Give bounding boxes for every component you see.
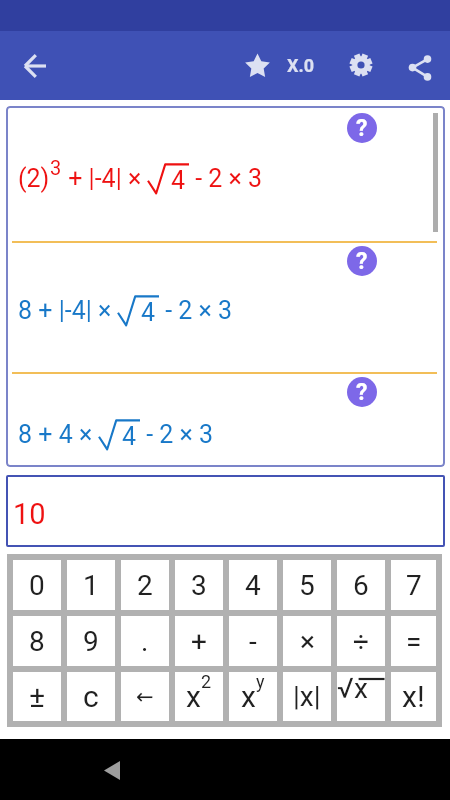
staticText: 8 + 4 × — [18, 420, 99, 449]
staticText: y — [256, 671, 265, 692]
staticText: ? — [356, 248, 368, 275]
staticText: + |-4| × — [62, 164, 148, 193]
staticText: + — [191, 625, 207, 658]
button[interactable]: 8 — [13, 616, 61, 666]
button[interactable]: x — [175, 672, 223, 721]
button[interactable] — [405, 50, 435, 80]
staticText: x — [186, 679, 201, 714]
staticText: - 2 × 3 — [159, 296, 233, 325]
staticText: x — [354, 672, 368, 705]
staticText: 4 — [122, 422, 137, 451]
button[interactable]: √ — [337, 672, 385, 721]
staticText: x — [241, 679, 256, 714]
staticText: ? — [356, 115, 368, 142]
button[interactable]: 3 — [175, 560, 223, 610]
staticText: - — [249, 625, 257, 658]
staticText: 9 — [83, 625, 99, 658]
button[interactable]: c — [67, 672, 115, 721]
staticText: ± — [29, 679, 46, 714]
button[interactable]: |x| — [283, 672, 331, 721]
button[interactable]: - — [229, 616, 277, 666]
button[interactable]: 2 — [121, 560, 169, 610]
staticText: 7 — [406, 569, 422, 602]
staticText: = — [406, 625, 422, 658]
staticText: 8 + |-4| × — [18, 296, 118, 325]
staticText: × — [300, 625, 315, 658]
staticText: 8 — [29, 625, 45, 658]
button[interactable]: + — [175, 616, 223, 666]
button[interactable]: 4 — [229, 560, 277, 610]
button[interactable]: x — [229, 672, 277, 721]
button[interactable]: 9 — [67, 616, 115, 666]
staticText: - 2 × 3 — [140, 420, 214, 449]
staticText: 4 — [245, 569, 261, 602]
button[interactable]: = — [391, 616, 436, 666]
button[interactable]: 1 — [67, 560, 115, 610]
staticText: 4 — [141, 298, 156, 327]
button[interactable]: 7 — [391, 560, 436, 610]
staticText: X.0 — [287, 55, 315, 76]
staticText: (2) — [18, 164, 50, 193]
button[interactable] — [243, 51, 271, 79]
button[interactable]: x! — [391, 672, 436, 721]
button[interactable]: ← — [121, 672, 169, 721]
button[interactable]: . — [121, 616, 169, 666]
staticText: 3 — [50, 156, 62, 179]
button[interactable]: ? — [347, 246, 377, 276]
staticText: x! — [402, 679, 425, 714]
staticText: ← — [136, 685, 154, 709]
staticText: 6 — [353, 569, 369, 602]
staticText: c — [83, 679, 99, 714]
staticText: 2 — [201, 671, 212, 692]
staticText: 4 — [171, 166, 186, 195]
staticText: - 2 × 3 — [189, 164, 263, 193]
button[interactable]: ? — [347, 377, 377, 407]
staticText: 10 — [13, 497, 46, 531]
staticText: ÷ — [353, 625, 369, 658]
button[interactable] — [15, 45, 56, 86]
staticText: 1 — [83, 569, 99, 602]
staticText: |x| — [293, 680, 321, 713]
button[interactable]: ± — [13, 672, 61, 721]
staticText: 3 — [191, 569, 207, 602]
button[interactable]: 6 — [337, 560, 385, 610]
staticText: 2 — [137, 569, 153, 602]
staticText: . — [141, 625, 149, 658]
button[interactable]: 0 — [13, 560, 61, 610]
staticText: 0 — [29, 569, 45, 602]
button[interactable] — [347, 51, 375, 79]
button[interactable]: × — [283, 616, 331, 666]
staticText: ? — [356, 379, 368, 406]
button[interactable]: ? — [347, 113, 377, 143]
button[interactable]: X.0 — [283, 45, 319, 85]
staticText: √ — [337, 672, 354, 705]
button[interactable] — [92, 750, 132, 790]
staticText: 5 — [299, 569, 315, 602]
button[interactable]: ÷ — [337, 616, 385, 666]
button[interactable]: 5 — [283, 560, 331, 610]
